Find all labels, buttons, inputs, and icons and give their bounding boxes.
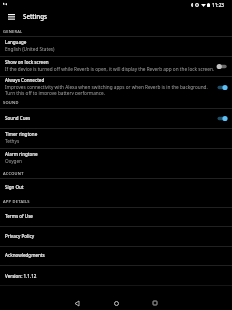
button[interactable]: Open navigation menu: [4, 10, 18, 22]
staticText: If the device is turned off while Reverb…: [5, 66, 215, 72]
staticText: 11:23: [212, 2, 225, 8]
button[interactable]: Timer ringtone: [0, 129, 232, 148]
button[interactable]: Toggle off: [217, 62, 228, 71]
button[interactable]: Acknowledgments: [0, 247, 232, 265]
staticText: Sign Out: [5, 184, 24, 190]
button[interactable]: Alarm ringtone: [0, 149, 232, 168]
staticText: Sound Cues: [5, 115, 31, 121]
staticText: Terms of Use: [5, 213, 33, 219]
staticText: SOUND: [3, 100, 19, 105]
button[interactable]: Privacy Policy: [0, 227, 232, 246]
staticText: Show on lock screen: [5, 59, 49, 65]
staticText: Alarm ringtone: [5, 151, 38, 157]
button[interactable]: Back: [70, 296, 84, 310]
button[interactable]: Terms of Use: [0, 208, 232, 226]
staticText: Version: 1.1.12: [5, 273, 37, 279]
button[interactable]: Show on lock screen: [0, 57, 232, 76]
button[interactable]: Toggle on: [217, 83, 228, 92]
staticText: Settings: [23, 12, 48, 20]
button[interactable]: Toggle on: [217, 114, 228, 123]
button[interactable]: Always Connected: [0, 77, 232, 97]
staticText: Privacy Policy: [5, 233, 35, 239]
staticText: Timer ringtone: [5, 131, 38, 137]
staticText: English (United States): [5, 46, 55, 52]
staticText: APP DETAILS: [3, 199, 30, 204]
staticText: GENERAL: [3, 29, 23, 34]
staticText: Language: [5, 39, 27, 45]
button[interactable]: Recent apps: [148, 296, 162, 310]
button[interactable]: Sound Cues: [0, 109, 232, 128]
staticText: Acknowledgments: [5, 252, 45, 258]
staticText: Oxygen: [5, 158, 22, 164]
staticText: Tethys: [5, 138, 20, 144]
staticText: Improves connectivity with Alexa when sw…: [5, 84, 215, 95]
staticText: ACCOUNT: [3, 171, 24, 176]
button[interactable]: Sign Out: [0, 179, 232, 196]
button[interactable]: Home: [109, 296, 123, 310]
staticText: Always Connected: [5, 77, 45, 83]
button[interactable]: Language: [0, 37, 232, 56]
